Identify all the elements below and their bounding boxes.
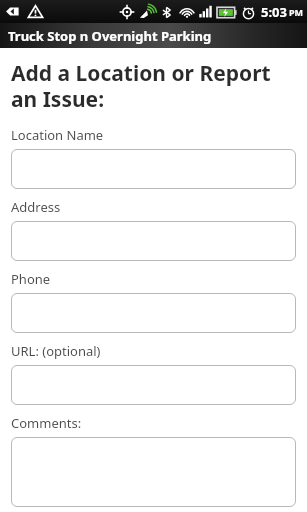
staticText: PM: [289, 6, 304, 18]
button[interactable]: URL optional: [11, 365, 296, 405]
button[interactable]: Phone: [11, 293, 296, 333]
button[interactable]: Truck Stop n Overnight Parking: [0, 23, 307, 48]
staticText: Location Name: [11, 126, 104, 144]
staticText: Phone: [11, 270, 51, 288]
staticText: 5:03: [261, 3, 287, 21]
button[interactable]: Location Name: [11, 149, 296, 189]
staticText: Add a Location or Report an Issue:: [11, 59, 296, 113]
staticText: URL: (optional): [11, 342, 101, 360]
button[interactable]: Comments: [11, 437, 296, 507]
staticText: Comments:: [11, 414, 82, 432]
staticText: Truck Stop n Overnight Parking: [8, 27, 212, 45]
staticText: Address: [11, 198, 61, 216]
button[interactable]: Address: [11, 221, 296, 261]
